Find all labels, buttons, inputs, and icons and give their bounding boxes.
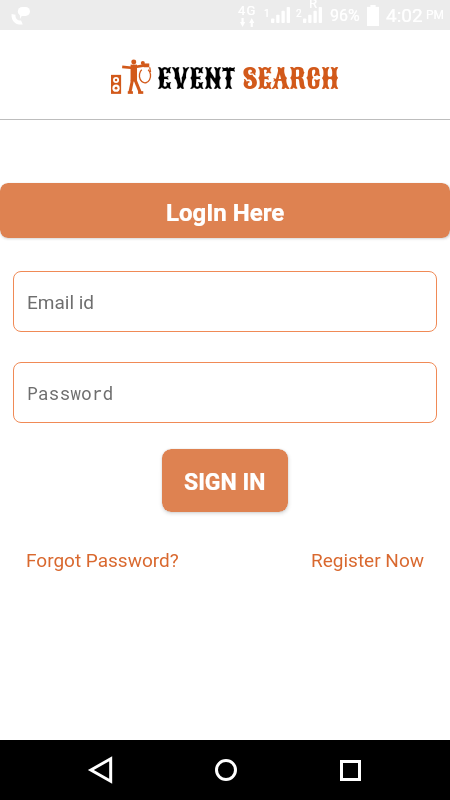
staticText: 1 <box>264 8 270 20</box>
staticText: 4G <box>238 3 257 18</box>
staticText: SIGN IN <box>184 469 266 496</box>
staticText: Password <box>27 381 114 405</box>
staticText: 4:02 <box>386 4 423 26</box>
button[interactable]: Forgot Password? <box>26 549 179 571</box>
button[interactable]: Password <box>13 362 437 423</box>
staticText: EVENT <box>157 59 235 98</box>
button[interactable]: Recents <box>288 740 413 800</box>
button[interactable]: Register Now <box>311 549 424 571</box>
button[interactable]: Email id <box>13 271 437 332</box>
staticText: SEARCH <box>243 59 340 98</box>
staticText: 2 <box>296 8 302 20</box>
button[interactable]: Back <box>38 740 163 800</box>
staticText: Email id <box>27 291 95 313</box>
staticText: PM <box>426 8 445 22</box>
button[interactable]: LogIn Here <box>0 183 450 238</box>
staticText: 96% <box>330 6 360 25</box>
staticText: LogIn Here <box>166 199 285 227</box>
staticText: R <box>309 0 318 11</box>
button[interactable]: Home <box>163 740 288 800</box>
button[interactable]: SIGN IN <box>162 449 288 512</box>
